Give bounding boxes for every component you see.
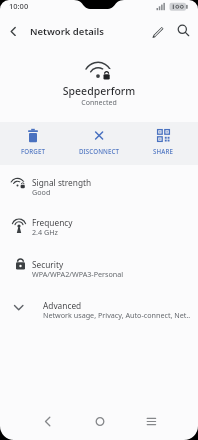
staticText: Signal strength: [32, 177, 92, 188]
button[interactable]: [0, 208, 198, 250]
staticText: Advanced: [43, 300, 82, 311]
button[interactable]: [0, 292, 198, 332]
button[interactable]: SHARE: [130, 122, 196, 165]
button[interactable]: [4, 22, 22, 40]
staticText: DISCONNECT: [66, 147, 132, 155]
staticText: Security: [32, 259, 64, 270]
button[interactable]: DISCONNECT: [66, 122, 132, 165]
staticText: WPA/WPA2/WPA3-Personal: [32, 269, 124, 279]
staticText: 10:00: [9, 1, 29, 11]
button[interactable]: [0, 168, 198, 208]
staticText: 2.4 GHz: [32, 227, 58, 237]
button[interactable]: [0, 250, 198, 292]
button[interactable]: [138, 410, 166, 434]
button[interactable]: [86, 410, 114, 434]
staticText: Good: [32, 187, 51, 197]
staticText: Frequency: [32, 217, 73, 228]
staticText: SHARE: [130, 147, 196, 155]
staticText: Speedperform: [0, 84, 198, 98]
staticText: Network details: [30, 25, 104, 38]
staticText: Network usage, Privacy, Auto-connect, Ne…: [43, 310, 191, 320]
button[interactable]: [148, 22, 168, 40]
staticText: Connected: [0, 98, 198, 108]
staticText: FORGET: [0, 147, 66, 155]
button[interactable]: [34, 410, 62, 434]
button[interactable]: [174, 22, 194, 40]
button[interactable]: FORGET: [0, 122, 66, 165]
